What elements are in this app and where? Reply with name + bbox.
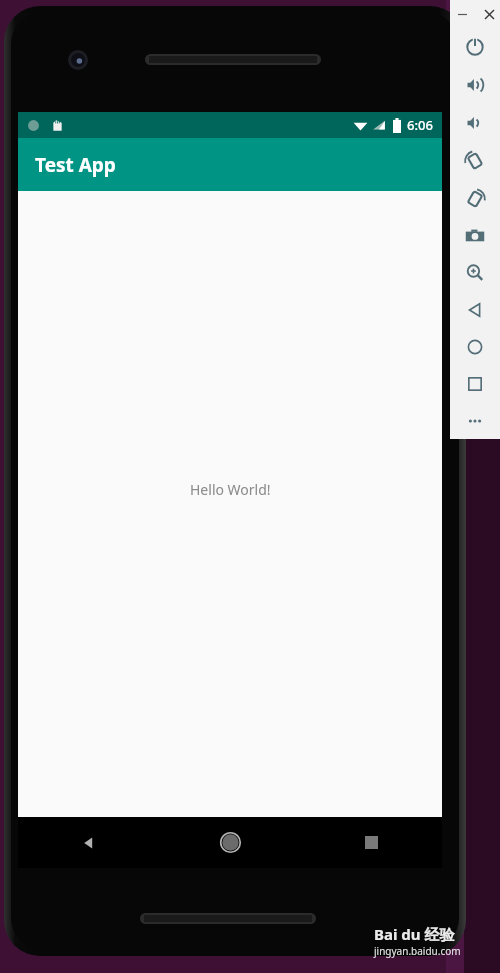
button[interactable]: Volume up	[450, 66, 500, 104]
button[interactable]: Screenshot	[450, 217, 500, 254]
button[interactable]: Overview	[450, 365, 500, 402]
button[interactable]: Home	[450, 328, 500, 365]
button[interactable]: Volume down	[450, 104, 500, 142]
button[interactable]: Close	[480, 5, 498, 23]
button[interactable]: Test App	[18, 138, 442, 191]
staticText: jingyan.baidu.com	[374, 944, 461, 958]
staticText: Test App	[35, 152, 116, 178]
button[interactable]: Power	[450, 28, 500, 66]
button[interactable]: Back	[18, 817, 160, 868]
staticText: Hello World!	[190, 480, 271, 499]
button[interactable]: Home	[160, 817, 301, 868]
button[interactable]: Zoom	[450, 254, 500, 291]
button[interactable]: Overview	[301, 817, 442, 868]
button[interactable]: Back	[450, 291, 500, 328]
button[interactable]: Minimize	[453, 5, 471, 23]
staticText: 6:06	[407, 116, 433, 134]
button[interactable]: More options	[450, 402, 500, 439]
staticText: Bai du 经验	[374, 924, 455, 944]
button[interactable]: Rotate left	[450, 142, 500, 180]
button[interactable]: Rotate right	[450, 180, 500, 217]
